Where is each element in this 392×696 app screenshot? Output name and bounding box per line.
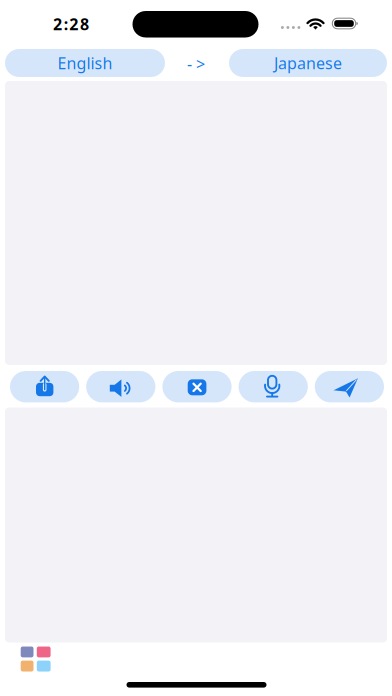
staticText: English [57, 52, 112, 74]
staticText: - > [187, 53, 205, 74]
staticText: Japanese [274, 52, 342, 74]
staticText: 2:28 [53, 13, 89, 35]
